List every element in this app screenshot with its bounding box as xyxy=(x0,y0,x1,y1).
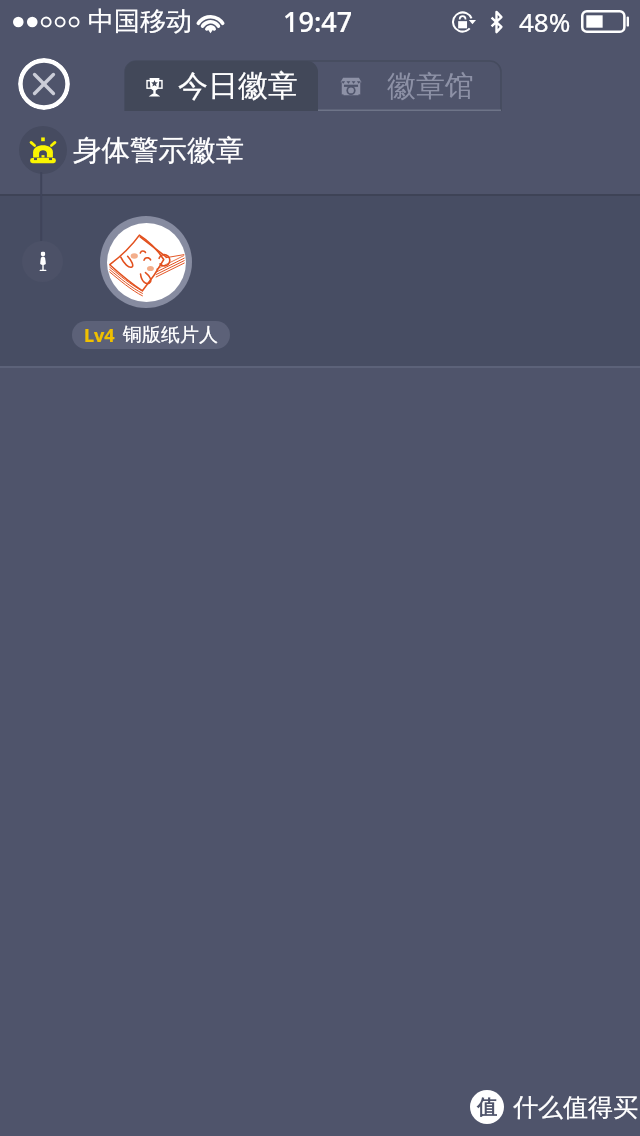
staticText: 铜版纸片人 xyxy=(123,323,218,347)
staticText: 今日徽章 xyxy=(178,67,298,105)
button[interactable]: 徽章馆 xyxy=(318,61,501,111)
button[interactable]: Close xyxy=(18,58,70,110)
button[interactable] xyxy=(100,216,192,308)
staticText: 中国移动 xyxy=(88,5,192,38)
staticText: Lv4 xyxy=(84,323,115,348)
staticText: 48% xyxy=(519,4,571,39)
staticText: 什么值得买 xyxy=(513,1092,638,1123)
button[interactable]: Lv4 xyxy=(72,321,230,349)
staticText: 值 xyxy=(477,1095,497,1120)
button[interactable]: 今日徽章 xyxy=(125,61,318,111)
staticText: 徽章馆 xyxy=(387,68,474,105)
staticText: 身体警示徽章 xyxy=(73,133,244,169)
staticText: 19:47 xyxy=(283,3,353,40)
